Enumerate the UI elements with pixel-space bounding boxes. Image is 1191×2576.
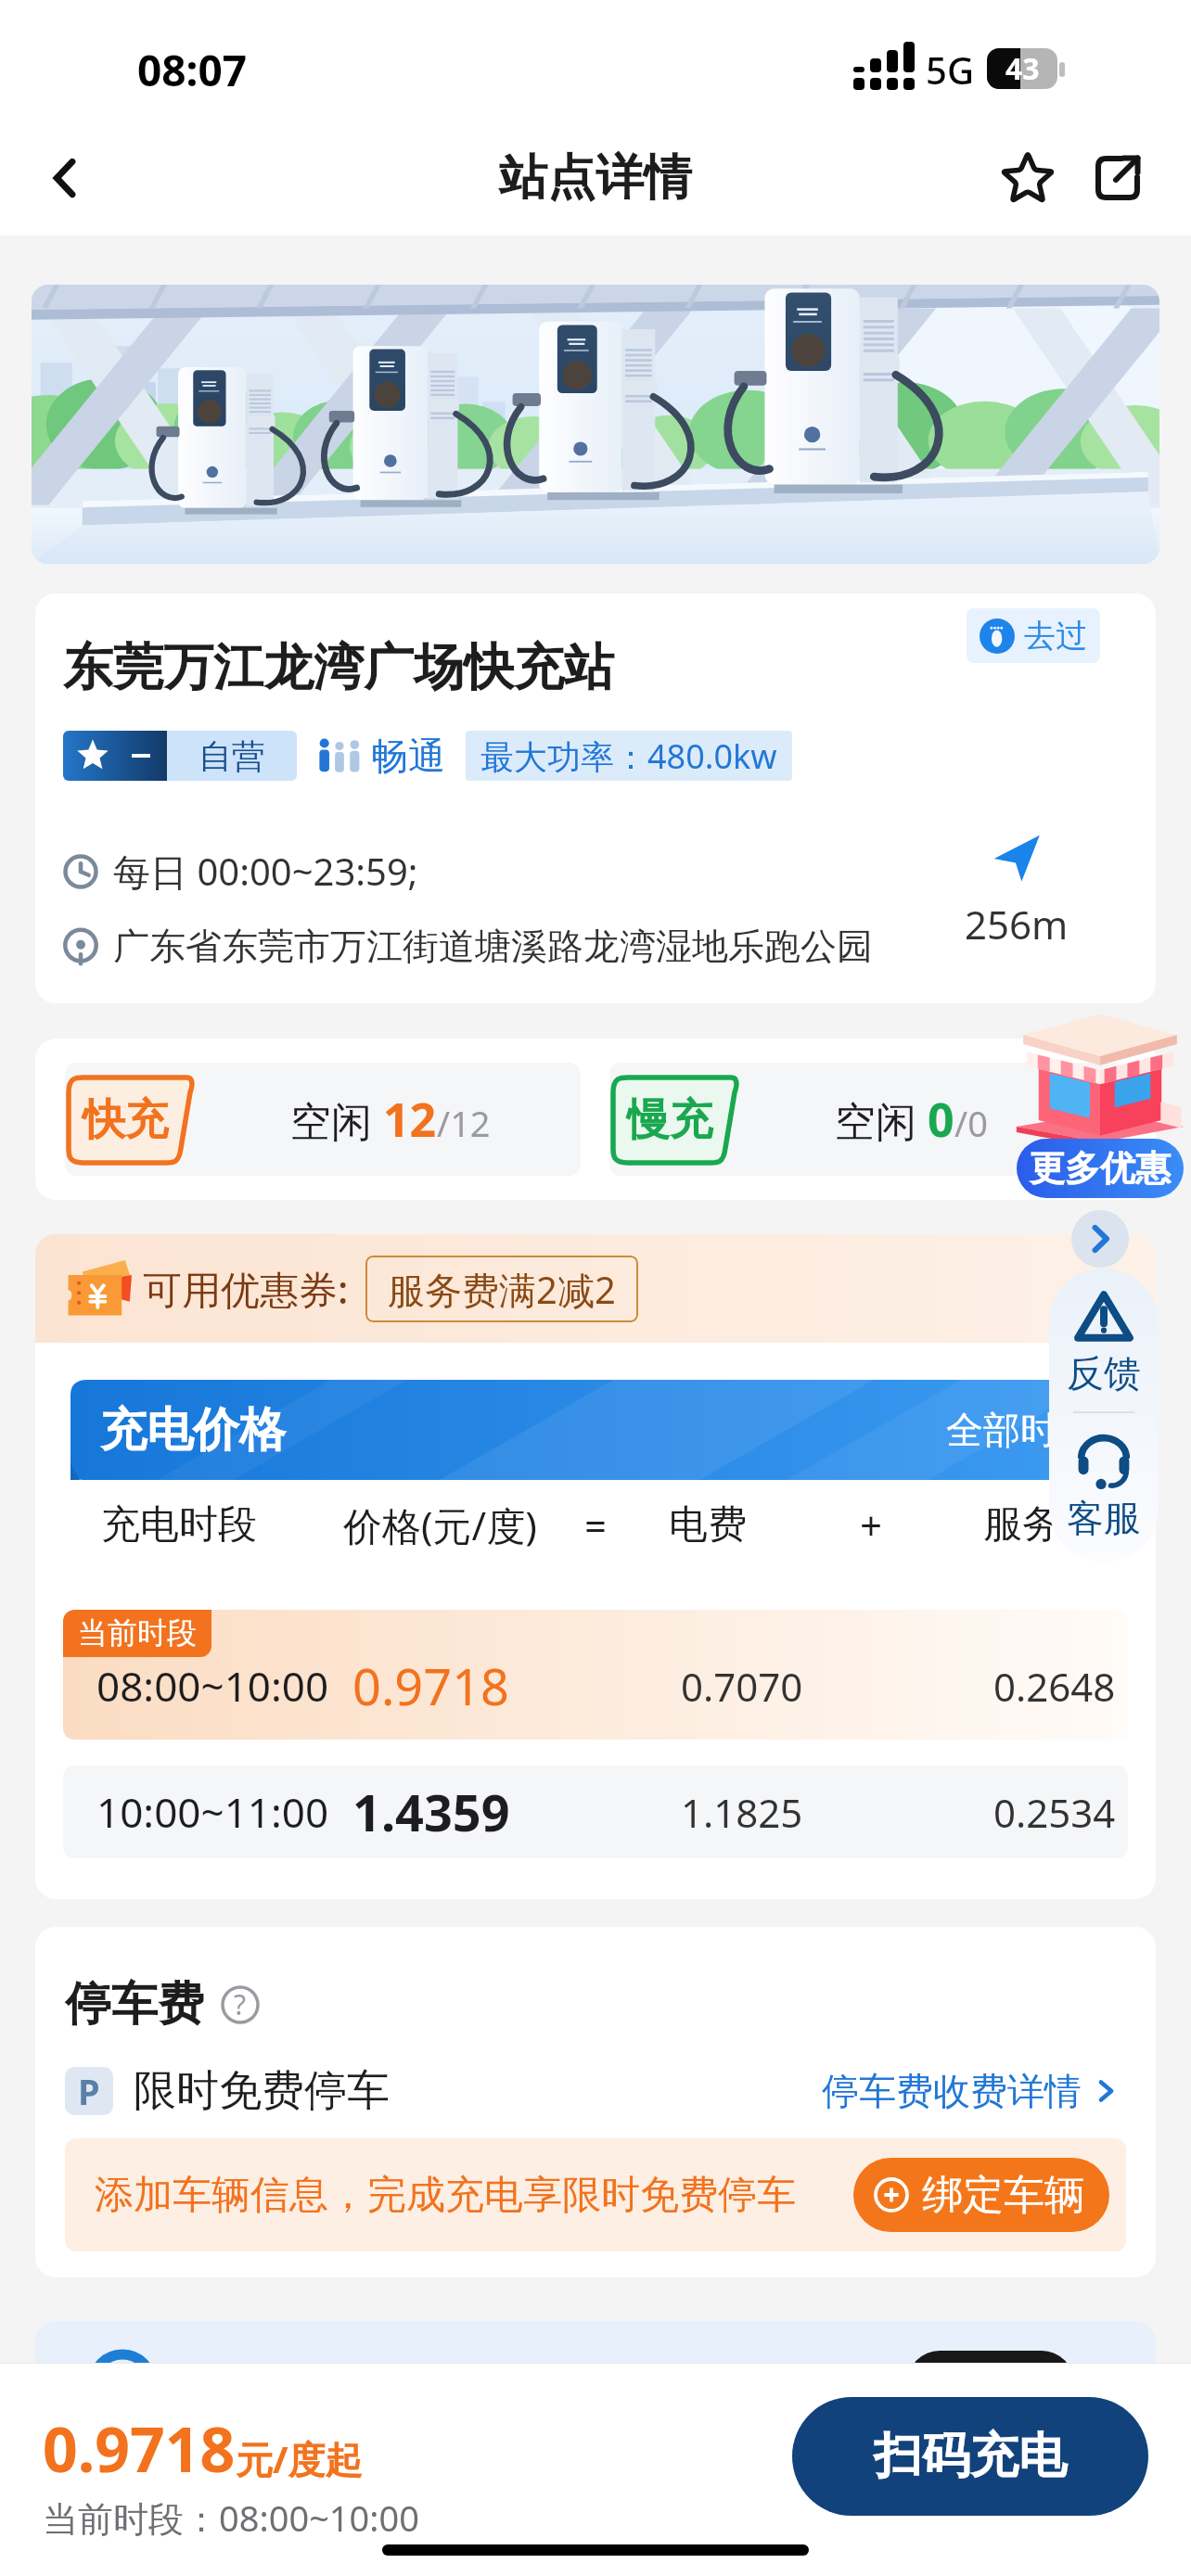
staticText: 绑定车辆 xyxy=(922,2170,1085,2221)
staticText: 停车费 xyxy=(65,1975,204,2034)
staticText: 自营 xyxy=(198,735,265,777)
staticText: 当前时段 xyxy=(78,1614,197,1651)
staticText: 扫码充电 xyxy=(874,2426,1067,2487)
staticText: 电费 xyxy=(669,1500,747,1549)
staticText: 0 xyxy=(928,1088,954,1151)
staticText: 10:00~11:00 xyxy=(96,1784,329,1840)
staticText: + xyxy=(860,1498,883,1551)
staticText: 广东省东莞市万江街道塘溪路龙湾湿地乐跑公园 xyxy=(113,924,873,969)
button[interactable]: 更多优惠 xyxy=(1017,1139,1184,1198)
staticText: 12 xyxy=(383,1088,437,1151)
staticText: 客服 xyxy=(1067,1495,1141,1541)
staticText: 43 xyxy=(1005,48,1040,89)
button[interactable]: 客服 xyxy=(1049,1432,1159,1541)
staticText: 最大功率：480.0kw xyxy=(480,733,777,779)
staticText: /12 xyxy=(437,1099,491,1147)
staticText: 1.4359 xyxy=(352,1778,510,1846)
button[interactable]: 反馈 xyxy=(1049,1289,1159,1396)
button[interactable]: Station photos xyxy=(32,285,1159,564)
staticText: /0 xyxy=(954,1099,988,1147)
staticText: 快充 xyxy=(83,1093,168,1147)
staticText: 停车费收费详情 xyxy=(822,2068,1082,2114)
staticText: 256m xyxy=(965,898,1069,950)
staticText: 空闲 xyxy=(290,1097,372,1148)
button[interactable]: 快充 xyxy=(65,1063,581,1176)
staticText: 1.1825 xyxy=(681,1786,803,1839)
staticText: 慢充 xyxy=(627,1093,712,1147)
staticText: 08:00~10:00 xyxy=(96,1658,329,1714)
staticText: 服务费 xyxy=(983,1500,1100,1549)
staticText: 空闲 xyxy=(835,1097,916,1148)
staticText: 充电价格 xyxy=(100,1401,286,1460)
button[interactable]: Share xyxy=(1076,136,1159,220)
staticText: 08:07 xyxy=(137,41,248,99)
button[interactable]: 10:00~11:00 xyxy=(63,1766,1128,1858)
staticText: 元/度起 xyxy=(236,2433,363,2484)
staticText: 畅通 xyxy=(371,733,445,779)
staticText: 0.9718 xyxy=(43,2406,236,2490)
staticText: 更多优惠 xyxy=(1030,1146,1171,1191)
button[interactable]: 扫码充电 xyxy=(792,2397,1148,2516)
staticText: 反馈 xyxy=(1067,1350,1141,1396)
staticText: ? xyxy=(234,1985,247,2023)
staticText: 5G xyxy=(926,45,974,95)
button[interactable]: 去过 xyxy=(980,616,1087,656)
button[interactable]: 绑定车辆 xyxy=(874,2158,1085,2232)
staticText: 添加车辆信息，完成充电享限时免费停车 xyxy=(95,2171,796,2220)
button[interactable]: 停车费收费详情 xyxy=(822,2068,1119,2114)
staticText: 0.2534 xyxy=(993,1786,1116,1839)
staticText: = xyxy=(584,1498,608,1551)
staticText: 站点详情 xyxy=(499,147,692,209)
staticText: P xyxy=(78,2067,100,2115)
button[interactable]: Favorite xyxy=(986,136,1069,220)
staticText: 全部时段 xyxy=(946,1407,1095,1453)
staticText: 限时免费停车 xyxy=(134,2064,390,2118)
staticText: 服务费满2减2 xyxy=(388,1264,616,1315)
button[interactable]: 可用优惠券: xyxy=(65,1234,1156,1343)
button[interactable]: 慢充 xyxy=(609,1063,1125,1176)
staticText: 0.9718 xyxy=(352,1651,509,1720)
staticText: 当前时段：08:00~10:00 xyxy=(43,2493,419,2542)
staticText: 东莞万江龙湾广场快充站 xyxy=(63,636,614,699)
staticText: 充电时段 xyxy=(101,1500,257,1549)
button[interactable]: Collapse panel xyxy=(1071,1210,1129,1268)
button[interactable]: Back xyxy=(20,134,109,223)
staticText: 可用优惠券: xyxy=(143,1262,349,1315)
button[interactable]: 当前时段 xyxy=(63,1610,1128,1740)
button[interactable]: Navigate xyxy=(942,833,1091,981)
staticText: 0.7070 xyxy=(681,1660,803,1713)
staticText: 价格(元/度) xyxy=(343,1498,537,1551)
staticText: 0.2648 xyxy=(993,1660,1116,1713)
button[interactable]: Parking fee help xyxy=(221,1985,260,2024)
staticText: 去过 xyxy=(1024,616,1087,656)
staticText: 每日 00:00~23:59; xyxy=(113,846,418,897)
